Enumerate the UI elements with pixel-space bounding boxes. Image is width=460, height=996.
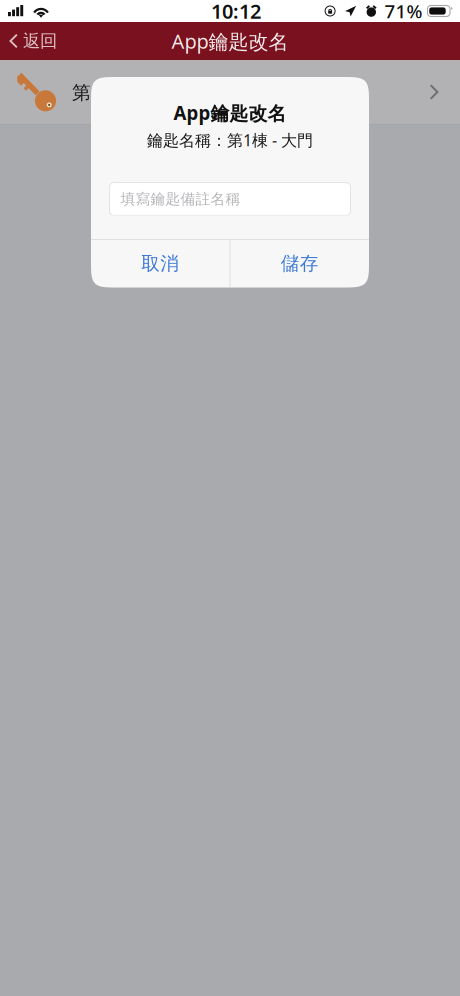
button[interactable]: 返回 [0,22,69,60]
staticText: App鑰匙改名 [171,28,288,54]
staticText: 返回 [23,30,57,52]
staticText: 取消 [141,252,179,275]
button[interactable]: 取消 [91,240,230,287]
staticText: 鑰匙名稱：第1棟 - 大門 [147,129,313,151]
staticText: 10:12 [211,0,261,24]
staticText: App鑰匙改名 [173,100,286,125]
button[interactable]: 儲存 [230,240,369,287]
button[interactable]: 第1棟 - 大門 [0,60,460,124]
staticText: 儲存 [281,252,319,275]
staticText: 填寫鑰匙備註名稱 [120,190,240,208]
staticText: 第1棟 - 大門 [72,80,175,104]
staticText: 71% [384,0,422,23]
